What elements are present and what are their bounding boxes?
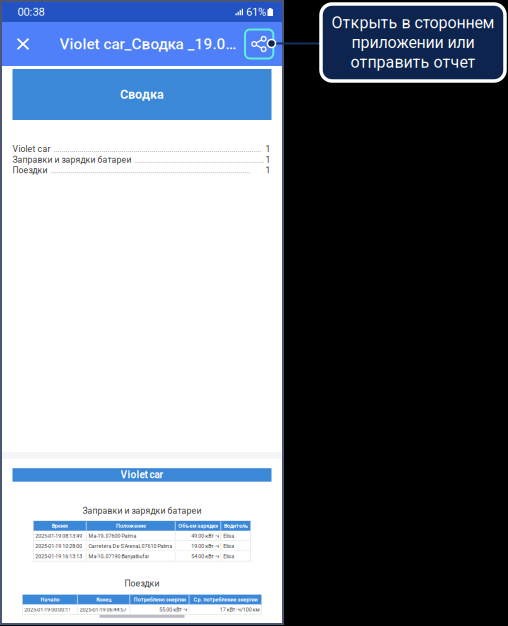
staticText: ........................................… bbox=[50, 165, 250, 175]
staticText: ........................................… bbox=[134, 155, 265, 165]
staticText: 2025-01-19 00:00:11 bbox=[24, 607, 71, 613]
staticText: Поездки bbox=[124, 578, 159, 589]
staticText: Violet car bbox=[120, 469, 163, 481]
staticText: Ср. потребление энергии bbox=[194, 596, 258, 603]
staticText: Elisa bbox=[223, 533, 234, 539]
staticText: 49.00 кВт⋅ч bbox=[191, 533, 219, 539]
staticText: Время bbox=[52, 523, 68, 529]
staticText: 1 bbox=[265, 155, 270, 165]
staticText: 2025-01-19 10:28:00 bbox=[35, 543, 82, 549]
staticText: Конец bbox=[96, 596, 111, 603]
staticText: Заправки и зарядки батареи bbox=[12, 155, 131, 165]
staticText: Сводка bbox=[120, 87, 164, 102]
staticText: Начало bbox=[40, 596, 59, 603]
staticText: Поездки bbox=[12, 165, 47, 175]
staticText: приложении или bbox=[351, 33, 474, 52]
staticText: 2025-01-19 08:13:49 bbox=[35, 533, 82, 539]
staticText: 55.00 кВт⋅ч bbox=[159, 607, 187, 613]
staticText: Потреблено энергии bbox=[134, 596, 186, 603]
staticText: ........................................… bbox=[53, 144, 261, 154]
staticText: Elisa bbox=[223, 543, 234, 549]
staticText: Carretera De S'Arenal, 07610 Palma bbox=[88, 543, 172, 549]
staticText: Violet car_Сводка _19.0… bbox=[59, 35, 236, 53]
staticText: отправить отчет bbox=[350, 53, 475, 72]
staticText: 2025-01-19 06:44:57 bbox=[79, 607, 126, 613]
staticText: Объем зарядки bbox=[178, 523, 218, 529]
button[interactable]: Поделиться bbox=[245, 22, 280, 66]
staticText: 54.00 кВт⋅ч bbox=[191, 553, 219, 559]
staticText: Elisa bbox=[223, 553, 234, 559]
staticText: 61% bbox=[246, 5, 266, 19]
staticText: Ma-10, 07190 Banyalbufar bbox=[88, 553, 149, 559]
button[interactable]: Закрыть bbox=[2, 22, 44, 66]
staticText: 17 кВт⋅ч/100 км bbox=[220, 607, 260, 613]
staticText: 2025-01-19 16:13:13 bbox=[35, 553, 82, 559]
staticText: Положение bbox=[116, 523, 146, 529]
staticText: Ma-19, 07600 Palma bbox=[88, 533, 136, 539]
staticText: Заправки и зарядки батареи bbox=[82, 506, 201, 516]
staticText: 00:38 bbox=[17, 5, 44, 19]
staticText: 19.00 кВт⋅ч bbox=[191, 543, 219, 549]
staticText: Открыть в стороннем bbox=[331, 13, 494, 32]
staticText: Violet car bbox=[12, 144, 50, 154]
staticText: 1 bbox=[265, 165, 270, 175]
staticText: Водитель bbox=[224, 523, 248, 529]
staticText: 1 bbox=[265, 144, 270, 154]
